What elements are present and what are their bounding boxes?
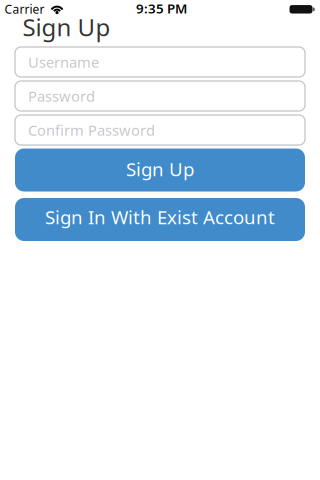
staticText: Password [28,86,95,106]
staticText: Confirm Password [28,120,155,140]
staticText: Sign Up [22,11,110,43]
staticText: Sign Up [126,157,194,181]
button[interactable]: Password [15,81,305,111]
staticText: 9:35 PM [136,0,187,17]
staticText: Carrier [4,1,44,17]
button[interactable]: Sign In With Exist Account [15,198,305,241]
staticText: Sign In With Exist Account [45,205,275,229]
button[interactable]: Sign Up [15,148,305,191]
staticText: Username [28,52,99,72]
button[interactable]: Username [15,47,305,77]
button[interactable]: Confirm Password [15,115,305,145]
